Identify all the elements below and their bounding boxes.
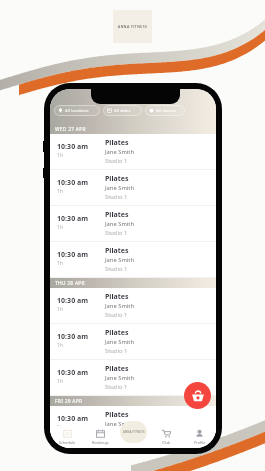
staticText: All classes [156, 108, 176, 114]
staticText: 10:30 am [57, 414, 89, 424]
button[interactable]: 10:30 am [50, 288, 216, 324]
staticText: ANNA FITNESS [118, 24, 148, 29]
staticText: 10:30 am [57, 178, 89, 188]
staticText: Pilates [105, 246, 129, 256]
button[interactable]: 10:30 am [50, 170, 216, 206]
staticText: Studio 1 [105, 347, 128, 355]
staticText: All locations [65, 108, 89, 114]
staticText: 1h [57, 152, 63, 159]
button[interactable]: 10:30 am [50, 406, 216, 442]
staticText: Pilates [105, 292, 129, 302]
staticText: Pilates [105, 138, 129, 148]
staticText: 1h [57, 188, 63, 195]
staticText: Jane Smith [105, 220, 134, 228]
staticText: 10:30 am [57, 368, 89, 378]
button[interactable]: All classes [145, 105, 185, 116]
staticText: WED 27 APR [55, 126, 86, 133]
button[interactable]: 10:30 am [50, 242, 216, 278]
button[interactable]: Anna Fitness [120, 421, 147, 443]
staticText: Jane Smith [105, 338, 134, 346]
staticText: 10:30 am [57, 142, 89, 152]
staticText: 1h [57, 424, 63, 431]
staticText: Schedule [59, 440, 76, 445]
staticText: 10:30 am [57, 332, 89, 342]
button[interactable]: 10:30 am [50, 360, 216, 396]
staticText: 10:30 am [57, 296, 89, 306]
button[interactable]: Basket [184, 382, 211, 409]
staticText: Studio 1 [105, 193, 128, 201]
staticText: Studio 1 [105, 429, 128, 437]
staticText: Jane Smith [105, 184, 134, 192]
staticText: Pilates [105, 410, 129, 420]
staticText: 10:30 am [57, 250, 89, 260]
staticText: Studio 1 [105, 311, 128, 319]
staticText: 1h [57, 342, 63, 349]
staticText: 1h [57, 306, 63, 313]
staticText: 10:30 am [57, 214, 89, 224]
staticText: Pilates [105, 364, 129, 374]
staticText: 1h [57, 378, 63, 385]
staticText: 1h [57, 224, 63, 231]
staticText: Studio 1 [105, 383, 128, 391]
button[interactable]: Bookings [84, 426, 117, 448]
button[interactable]: All dates [103, 105, 142, 116]
staticText: 1h [57, 260, 63, 267]
staticText: Pilates [105, 328, 129, 338]
staticText: Profile [194, 440, 206, 445]
staticText: THU 28 APR [55, 280, 85, 287]
staticText: FRI 29 APR [55, 398, 83, 405]
staticText: Jane Smith [105, 374, 134, 382]
staticText: ANNA FITNESS [123, 430, 145, 434]
staticText: All dates [114, 108, 131, 114]
staticText: Club [162, 440, 171, 445]
staticText: Studio 1 [105, 265, 128, 273]
staticText: Pilates [105, 174, 129, 184]
button[interactable]: 10:30 am [50, 206, 216, 242]
button[interactable]: Profile [183, 426, 216, 448]
staticText: Jane Smith [105, 148, 134, 156]
staticText: Jane Smith [105, 302, 134, 310]
button[interactable]: Club [150, 426, 183, 448]
staticText: Jane Smith [105, 256, 134, 264]
staticText: Studio 1 [105, 157, 128, 165]
button[interactable]: 10:30 am [50, 134, 216, 170]
button[interactable]: 10:30 am [50, 324, 216, 360]
button[interactable]: Schedule [50, 426, 84, 448]
staticText: Bookings [92, 440, 109, 445]
staticText: Jane Smith [105, 420, 134, 428]
staticText: Pilates [105, 210, 129, 220]
button[interactable]: All locations [54, 105, 100, 116]
staticText: Studio 1 [105, 229, 128, 237]
